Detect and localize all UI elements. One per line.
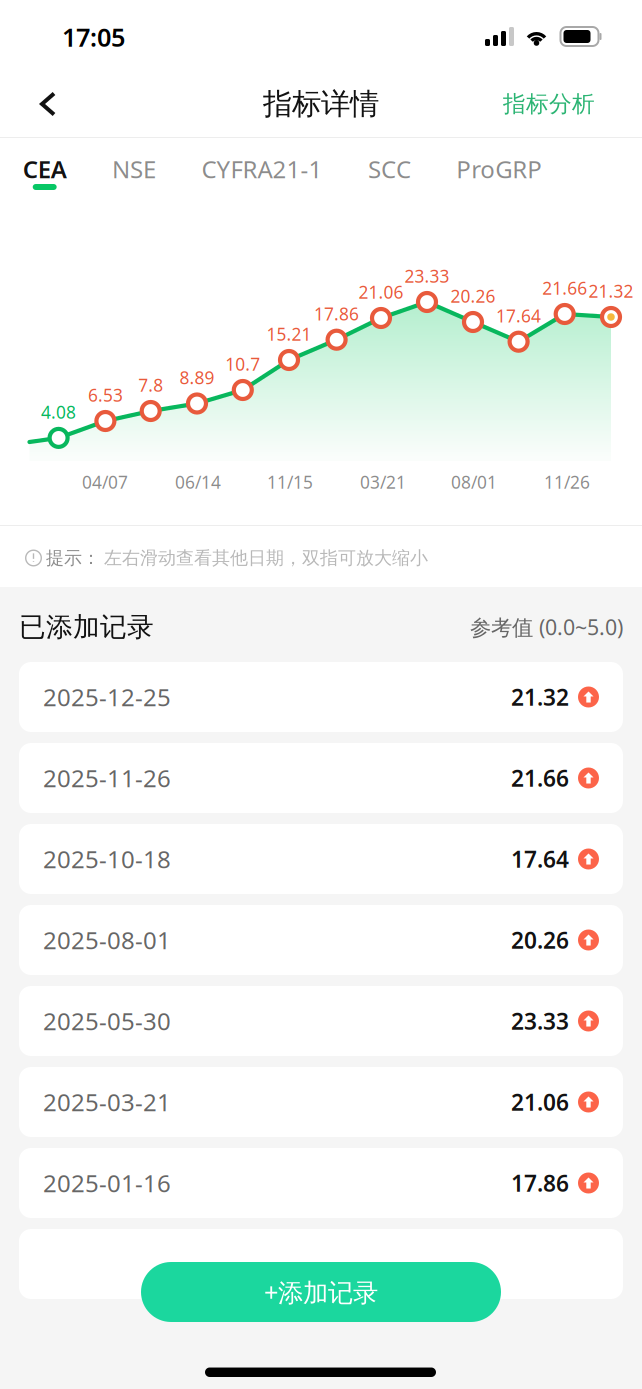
staticText: +添加记录 <box>264 1275 378 1309</box>
staticText: 17.86 <box>511 1168 569 1198</box>
staticText: 指标分析 <box>503 90 595 118</box>
staticText: 06/14 <box>175 470 221 493</box>
staticText: 17.86 <box>314 302 359 325</box>
staticText: 11/15 <box>267 470 313 493</box>
staticText: 4.08 <box>41 400 76 423</box>
staticText: 7.8 <box>138 373 163 396</box>
staticText: 21.66 <box>511 763 569 793</box>
staticText: 03/21 <box>360 470 406 493</box>
staticText: 21.06 <box>511 1087 569 1117</box>
staticText: 2025-12-25 <box>43 681 171 713</box>
staticText: 04/07 <box>82 470 128 493</box>
button[interactable]: +添加记录 <box>141 1262 501 1322</box>
staticText: 17:05 <box>62 20 125 54</box>
staticText: 21.66 <box>542 276 587 299</box>
staticText: 指标详情 <box>263 86 379 122</box>
staticText: 20.26 <box>450 284 495 307</box>
staticText: 已添加记录 <box>19 611 154 643</box>
button[interactable]: 2025-03-21 <box>19 1067 623 1137</box>
staticText: 2025-11-26 <box>43 762 171 794</box>
button[interactable]: CEA <box>0 138 89 203</box>
staticText: 左右滑动查看其他日期，双指可放大缩小 <box>104 547 428 569</box>
button[interactable]: SCC <box>345 138 434 203</box>
button[interactable]: Back <box>18 74 78 134</box>
staticText: 21.32 <box>588 279 633 302</box>
staticText: 提示： <box>46 547 100 569</box>
staticText: SCC <box>368 153 411 185</box>
staticText: 17.64 <box>496 304 541 327</box>
staticText: 8.89 <box>179 366 214 389</box>
staticText: 11/26 <box>544 470 590 493</box>
button[interactable]: 2025-08-01 <box>19 905 623 975</box>
button[interactable]: NSE <box>89 138 179 203</box>
staticText: 2025-03-21 <box>43 1086 171 1118</box>
staticText: 2025-08-01 <box>43 924 171 956</box>
staticText: 21.32 <box>511 682 569 712</box>
button[interactable]: ProGRP <box>434 138 565 203</box>
staticText: 10.7 <box>225 352 260 375</box>
button[interactable]: 2025-05-30 <box>19 986 623 1056</box>
staticText: 6.53 <box>88 383 123 406</box>
staticText: 2025-05-30 <box>43 1005 171 1037</box>
button[interactable]: 2025-10-18 <box>19 824 623 894</box>
staticText: 2025-01-16 <box>43 1167 171 1199</box>
staticText: 15.21 <box>266 322 311 345</box>
button[interactable]: 2025-12-25 <box>19 662 623 732</box>
staticText: NSE <box>112 153 156 185</box>
button[interactable]: 指标分析 <box>465 74 595 134</box>
button[interactable]: 2025-01-16 <box>19 1148 623 1218</box>
staticText: ProGRP <box>456 153 542 185</box>
staticText: 08/01 <box>451 470 497 493</box>
staticText: 20.26 <box>511 925 569 955</box>
staticText: CEA <box>23 153 67 185</box>
staticText: 23.33 <box>511 1006 569 1036</box>
button[interactable]: CYFRA21-1 <box>179 138 345 203</box>
staticText: 参考值 (0.0~5.0) <box>470 613 623 641</box>
staticText: 21.06 <box>358 280 403 303</box>
button[interactable] <box>19 1229 623 1299</box>
staticText: 23.33 <box>404 264 449 287</box>
button[interactable]: 2025-11-26 <box>19 743 623 813</box>
staticText: 2025-10-18 <box>43 843 171 875</box>
staticText: 17.64 <box>511 844 569 874</box>
staticText: CYFRA21-1 <box>201 153 322 185</box>
